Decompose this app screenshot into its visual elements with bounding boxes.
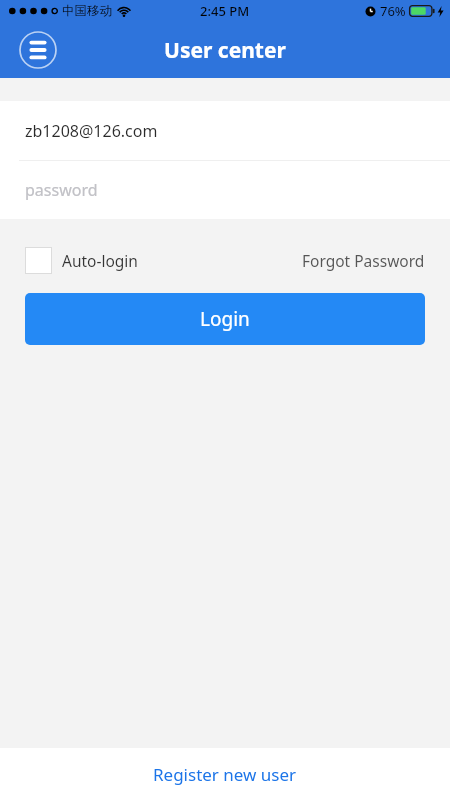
button[interactable]: Register new user — [0, 748, 450, 800]
button[interactable]: Auto-login — [25, 247, 142, 274]
staticText: 76% — [380, 2, 406, 20]
button[interactable]: Menu — [19, 31, 57, 69]
button[interactable]: Login — [25, 293, 425, 345]
staticText: zb1208@126.com — [25, 120, 158, 142]
staticText: 2:45 PM — [200, 2, 250, 20]
staticText: Register new user — [153, 763, 297, 786]
staticText: User center — [164, 36, 286, 65]
staticText: Forgot Password — [302, 250, 425, 271]
staticText: Auto-login — [62, 250, 138, 271]
button[interactable]: Forgot Password — [302, 250, 425, 271]
button[interactable]: zb1208@126.com — [0, 101, 450, 160]
staticText: Login — [200, 306, 250, 332]
staticText: 中国移动 — [62, 3, 112, 19]
button[interactable]: password — [0, 161, 450, 219]
staticText: password — [25, 179, 98, 201]
